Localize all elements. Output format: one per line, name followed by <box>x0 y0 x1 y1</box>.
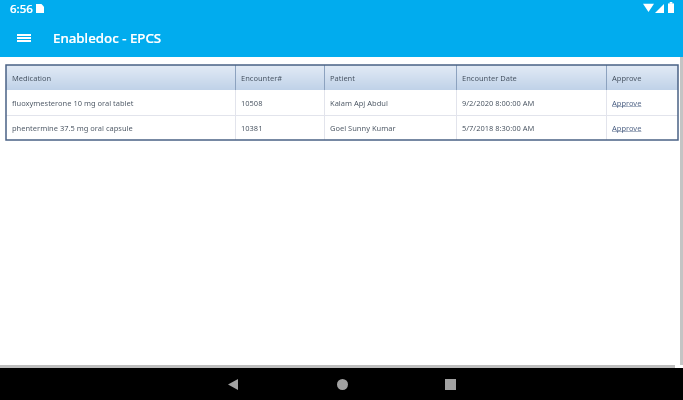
staticText: Encounter Date <box>462 73 517 83</box>
staticText: 10508 <box>241 98 263 108</box>
staticText: Patient <box>330 73 355 83</box>
staticText: 10381 <box>241 123 263 133</box>
staticText: 6:56 <box>10 1 33 17</box>
staticText: Kalam Apj Abdul <box>330 98 388 108</box>
staticText: Approve <box>612 98 642 108</box>
staticText: 9/2/2020 8:00:00 AM <box>462 98 535 108</box>
staticText: fluoxymesterone 10 mg oral tablet <box>12 98 134 108</box>
staticText: Enabledoc - EPCS <box>53 29 162 47</box>
button[interactable]: Open navigation menu <box>10 24 38 52</box>
button[interactable]: Back <box>218 369 248 399</box>
staticText: Approve <box>612 123 642 133</box>
button[interactable]: Approve <box>606 115 676 140</box>
button[interactable]: Approve <box>606 90 676 115</box>
button[interactable]: Home <box>327 369 357 399</box>
staticText: Goel Sunny Kumar <box>330 123 396 133</box>
staticText: Approve <box>612 73 642 83</box>
staticText: 5/7/2018 8:30:00 AM <box>462 123 535 133</box>
staticText: Medication <box>12 73 52 83</box>
staticText: Encounter# <box>241 73 283 83</box>
staticText: phentermine 37.5 mg oral capsule <box>12 123 133 133</box>
button[interactable]: Recent apps <box>435 369 465 399</box>
